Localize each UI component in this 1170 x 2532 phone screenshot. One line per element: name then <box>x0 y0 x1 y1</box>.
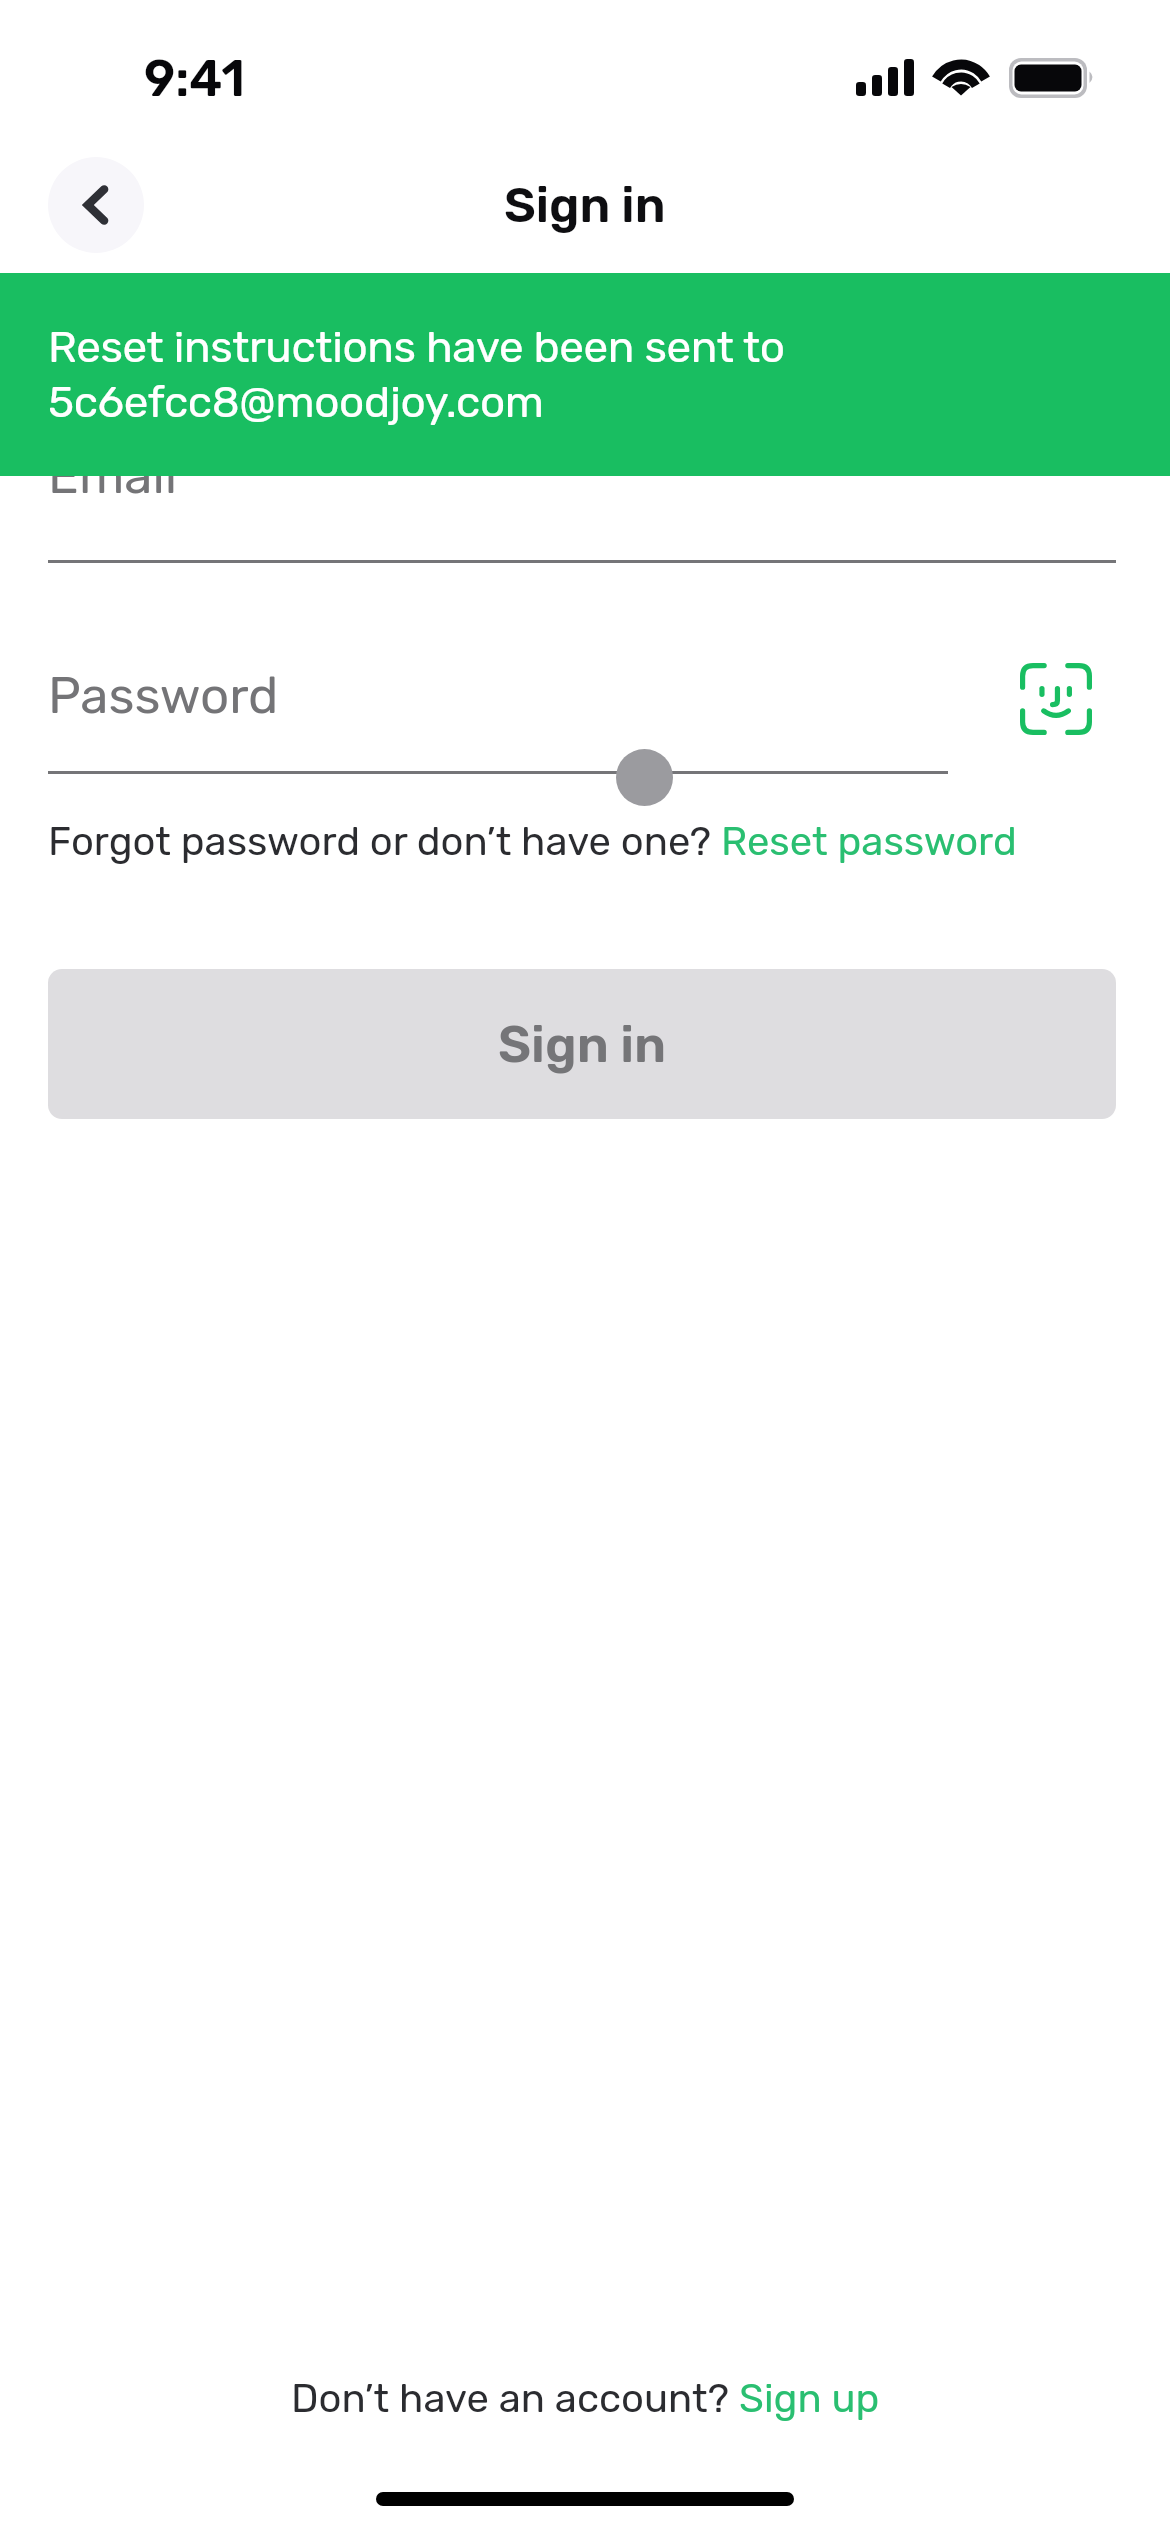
button[interactable]: Face ID <box>1020 663 1092 735</box>
button[interactable]: Reset password <box>721 818 1017 865</box>
staticText: Sign in <box>504 176 666 234</box>
staticText: Sign in <box>498 1014 667 1074</box>
button[interactable]: Sign up <box>739 2375 880 2422</box>
staticText: Don’t have an account? <box>291 2375 739 2422</box>
staticText: Forgot password or don’t have one? <box>48 818 721 865</box>
staticText: Email <box>48 445 178 505</box>
button[interactable]: Sign in <box>48 969 1116 1119</box>
staticText: 9:41 <box>144 49 245 108</box>
button[interactable]: Reset instructions have been sent to 5c6… <box>0 273 1170 476</box>
staticText: Password <box>48 665 279 725</box>
staticText: Reset instructions have been sent to 5c6… <box>48 321 785 428</box>
button[interactable]: Back <box>48 157 144 253</box>
